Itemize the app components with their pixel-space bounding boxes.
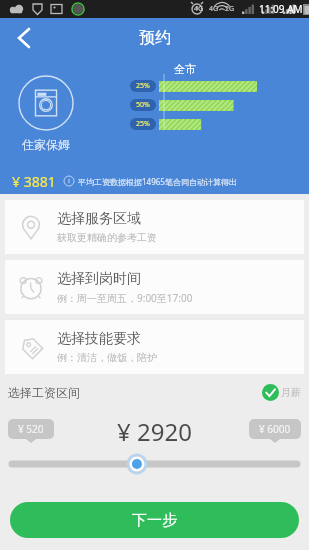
staticText: ¥ 3881 (12, 172, 56, 191)
staticText: 例：周一至周五，9:00至17:00 (57, 291, 193, 305)
staticText: 选择服务区域 (57, 210, 141, 228)
staticText: 例：清洁，做饭，陪护 (57, 351, 157, 364)
staticText: 4G (194, 4, 204, 14)
staticText: 2G (225, 4, 235, 14)
button[interactable]: 月薪 (262, 384, 301, 401)
staticText: 选择到岗时间 (57, 270, 141, 288)
staticText: ¥ 520 (18, 422, 44, 436)
staticText: 平均工资数据根据14965笔合同自动计算得出 (78, 176, 237, 187)
staticText: 4G (209, 4, 219, 14)
button[interactable]: Salary slider (8, 453, 301, 475)
staticText: ¥ 2920 (117, 415, 192, 448)
staticText: 预约 (139, 28, 171, 48)
staticText: 选择工资区间 (8, 385, 80, 400)
staticText: 下一步 (132, 511, 177, 530)
staticText: 住家保姆 (22, 137, 70, 152)
staticText: 获取更精确的参考工资 (57, 231, 157, 244)
button[interactable]: Back (4, 18, 44, 58)
staticText: 50% (136, 100, 150, 110)
button[interactable]: 选择到岗时间 (5, 260, 304, 314)
staticText: 月薪 (281, 386, 301, 399)
staticText: 选择技能要求 (57, 330, 141, 348)
staticText: 全市 (174, 62, 196, 76)
staticText: 25% (136, 81, 150, 91)
button[interactable]: 选择技能要求 (5, 320, 304, 374)
button[interactable]: 下一步 (10, 502, 299, 538)
button[interactable]: 选择服务区域 (5, 200, 304, 254)
staticText: 25% (136, 119, 150, 129)
staticText: ¥ 6000 (259, 422, 291, 436)
staticText: 11:09 AM (259, 2, 303, 16)
